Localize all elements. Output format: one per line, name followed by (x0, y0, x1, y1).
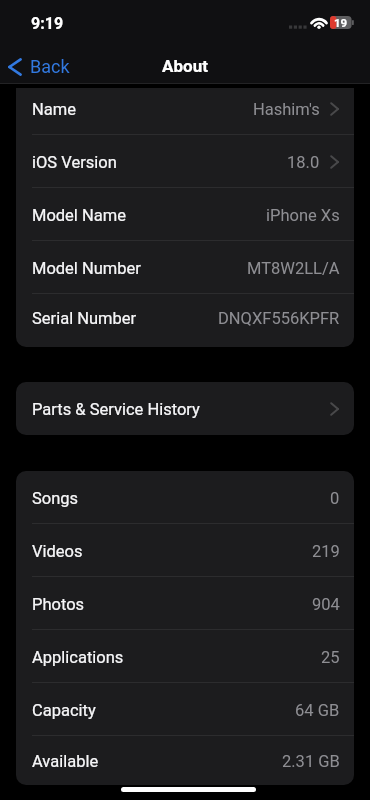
button[interactable]: Videos (16, 524, 354, 577)
staticText: Photos (32, 595, 85, 614)
button[interactable]: Available (16, 736, 354, 785)
staticText: Videos (32, 542, 83, 561)
staticText: About (162, 56, 208, 76)
button[interactable]: Model Name (16, 188, 354, 241)
button[interactable]: Parts & Service History (16, 382, 354, 435)
button[interactable]: Serial Number (16, 294, 354, 341)
button[interactable]: Model Number (16, 241, 354, 294)
staticText: Model Name (32, 206, 126, 225)
button[interactable]: Capacity (16, 683, 354, 736)
button[interactable]: iOS Version (16, 135, 354, 188)
staticText: Name (32, 100, 76, 119)
staticText: Hashim's (253, 100, 320, 119)
button[interactable]: Back (4, 53, 78, 80)
button[interactable]: Applications (16, 630, 354, 683)
staticText: 219 (312, 542, 340, 561)
staticText: Parts & Service History (32, 400, 200, 419)
staticText: Applications (32, 648, 124, 667)
button[interactable]: Songs (16, 471, 354, 524)
staticText: 18.0 (287, 153, 320, 172)
staticText: 9:19 (31, 14, 64, 33)
staticText: 2.31 GB (282, 752, 340, 771)
button[interactable]: Name (16, 88, 354, 135)
staticText: Capacity (32, 701, 96, 720)
staticText: 904 (312, 595, 340, 614)
staticText: 25 (321, 648, 340, 667)
staticText: 0 (330, 489, 340, 508)
staticText: Back (30, 56, 70, 77)
staticText: Available (32, 752, 99, 771)
staticText: iPhone Xs (266, 206, 340, 225)
staticText: 64 GB (295, 701, 340, 720)
staticText: Songs (32, 489, 79, 508)
staticText: iOS Version (32, 153, 117, 172)
button[interactable]: Photos (16, 577, 354, 630)
staticText: Model Number (32, 259, 141, 278)
staticText: 19 (334, 16, 348, 29)
staticText: Serial Number (32, 309, 137, 328)
staticText: DNQXF556KPFR (218, 309, 340, 328)
staticText: MT8W2LL/A (247, 259, 340, 278)
